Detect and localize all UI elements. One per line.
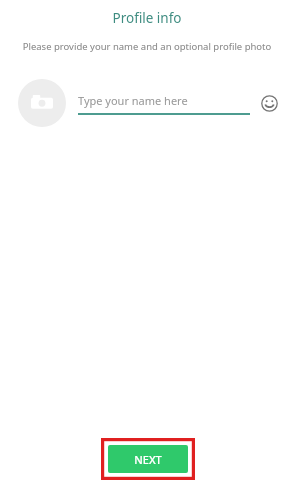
button[interactable]: Emoji [256,90,282,116]
button[interactable]: Add profile photo [18,79,66,127]
staticText: Please provide your name and an optional… [22,40,272,53]
staticText: NEXT [134,452,162,467]
staticText: Profile info [0,9,294,27]
button[interactable]: NEXT [108,445,188,473]
staticText: Type your name here [78,93,188,108]
button[interactable]: Type your name here [78,86,250,120]
